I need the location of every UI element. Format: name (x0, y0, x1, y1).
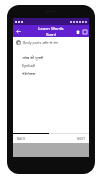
button[interactable]: Back (13, 26, 24, 37)
staticText: BACK (17, 137, 26, 141)
button[interactable]: NEXT (77, 137, 85, 141)
button[interactable]: BACK (17, 137, 26, 141)
staticText: Eyeball (22, 63, 35, 68)
button[interactable]: Home (74, 28, 81, 35)
button[interactable]: आँख की पुतली (13, 53, 89, 61)
button[interactable]: नेत्रगोलक (13, 69, 89, 77)
staticText: NEXT (77, 137, 85, 141)
staticText: Learn Words (38, 26, 64, 32)
button[interactable]: Eyeball (13, 61, 89, 69)
staticText: नेत्रगोलक (22, 71, 36, 76)
staticText: आँख की पुतली (22, 55, 44, 60)
staticText: Body parts शरीर के अंग (23, 40, 58, 45)
staticText: Board (46, 32, 56, 37)
button[interactable]: Recent apps (81, 28, 88, 35)
